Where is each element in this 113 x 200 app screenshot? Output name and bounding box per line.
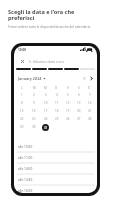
button[interactable]: 23 <box>28 115 40 123</box>
staticText: 13 <box>77 101 81 105</box>
button[interactable]: 28 <box>84 115 95 123</box>
staticText: V <box>67 86 69 90</box>
button[interactable]: Chiudi <box>19 58 25 64</box>
button[interactable]: 29 <box>16 123 28 131</box>
button[interactable]: 1 <box>16 91 28 99</box>
button[interactable]: Mese precedente <box>81 75 88 82</box>
staticText: 17 <box>44 109 48 113</box>
staticText: 7 <box>89 93 91 97</box>
staticText: 18 <box>55 109 59 113</box>
button[interactable]: 27 <box>73 115 84 123</box>
button[interactable]: 19 <box>62 107 73 115</box>
staticText: 4 <box>56 93 58 97</box>
staticText: S <box>78 86 80 90</box>
staticText: 6 <box>78 93 80 97</box>
staticText: alle 10:30 <box>18 145 33 149</box>
button[interactable]: 9 <box>28 99 40 107</box>
staticText: 15 <box>20 109 24 113</box>
button[interactable]: 6 <box>73 91 84 99</box>
button[interactable]: 2 <box>28 91 40 99</box>
staticText: 9 <box>33 101 35 105</box>
button[interactable]: 17 <box>40 107 51 115</box>
button[interactable]: 15 <box>16 107 28 115</box>
staticText: 23 <box>32 117 36 121</box>
staticText: 11 <box>55 101 59 105</box>
button[interactable]: 5 <box>62 91 73 99</box>
button[interactable]: 16 <box>28 107 40 115</box>
button[interactable]: 30 <box>28 123 40 131</box>
staticText: 1 <box>21 93 23 97</box>
staticText: 19 <box>66 109 70 113</box>
staticText: 22 <box>20 117 24 121</box>
button[interactable]: Mese successivo <box>88 75 95 82</box>
button[interactable]: 26 <box>62 115 73 123</box>
staticText: 28 <box>88 117 92 121</box>
staticText: alle 14:00 <box>18 167 33 171</box>
staticText: 16 <box>32 109 36 113</box>
staticText: 3 <box>45 93 47 97</box>
staticText: 10 <box>44 101 48 105</box>
staticText: 5 <box>67 93 69 97</box>
staticText: 29 <box>20 125 24 129</box>
staticText: January 2024 <box>18 76 42 81</box>
staticText: 5. Seleziona data e ora <box>29 59 64 63</box>
button[interactable]: 21 <box>84 107 95 115</box>
button[interactable]: January 2024 <box>18 76 46 81</box>
staticText: 20 <box>77 109 81 113</box>
staticText: D <box>88 86 91 90</box>
staticText: 30 <box>32 125 36 129</box>
button[interactable]: 8 <box>16 99 28 107</box>
button[interactable]: 13 <box>73 99 84 107</box>
staticText: 21 <box>88 109 92 113</box>
staticText: 26 <box>66 117 70 121</box>
button[interactable]: 20 <box>73 107 84 115</box>
button[interactable]: 11 <box>51 99 62 107</box>
staticText: alle 14:30 <box>18 178 33 182</box>
staticText: Scegli la data e l'ora che preferisci <box>8 8 75 22</box>
staticText: 2 <box>33 93 35 97</box>
staticText: M <box>33 86 36 90</box>
button[interactable]: 31 <box>40 123 51 131</box>
staticText: 24 <box>44 117 48 121</box>
staticText: Potrai vedere tutte le disponibilità anc… <box>8 25 91 29</box>
staticText: 27 <box>77 117 81 121</box>
staticText: 31 <box>44 126 48 130</box>
button[interactable]: 7 <box>84 91 95 99</box>
staticText: G <box>55 86 58 90</box>
button[interactable]: alle 11:00 <box>14 152 97 163</box>
staticText: 8 <box>21 101 23 105</box>
staticText: 12 <box>66 101 70 105</box>
button[interactable]: alle 10:30 <box>14 141 97 152</box>
button[interactable]: alle 16:00 <box>14 185 97 193</box>
button[interactable]: 10 <box>40 99 51 107</box>
staticText: 10:00 <box>18 48 27 52</box>
button[interactable]: 25 <box>51 115 62 123</box>
staticText: 14 <box>88 101 92 105</box>
button[interactable]: alle 14:00 <box>14 163 97 174</box>
staticText: M <box>44 86 47 90</box>
button[interactable]: 18 <box>51 107 62 115</box>
button[interactable]: alle 14:30 <box>14 174 97 185</box>
button[interactable]: 14 <box>84 99 95 107</box>
staticText: alle 11:00 <box>18 156 33 160</box>
staticText: alle 16:00 <box>18 189 33 193</box>
staticText: L <box>21 86 23 90</box>
button[interactable]: 24 <box>40 115 51 123</box>
button[interactable]: 12 <box>62 99 73 107</box>
staticText: 25 <box>55 117 59 121</box>
button[interactable]: 3 <box>40 91 51 99</box>
button[interactable]: 22 <box>16 115 28 123</box>
button[interactable]: 4 <box>51 91 62 99</box>
